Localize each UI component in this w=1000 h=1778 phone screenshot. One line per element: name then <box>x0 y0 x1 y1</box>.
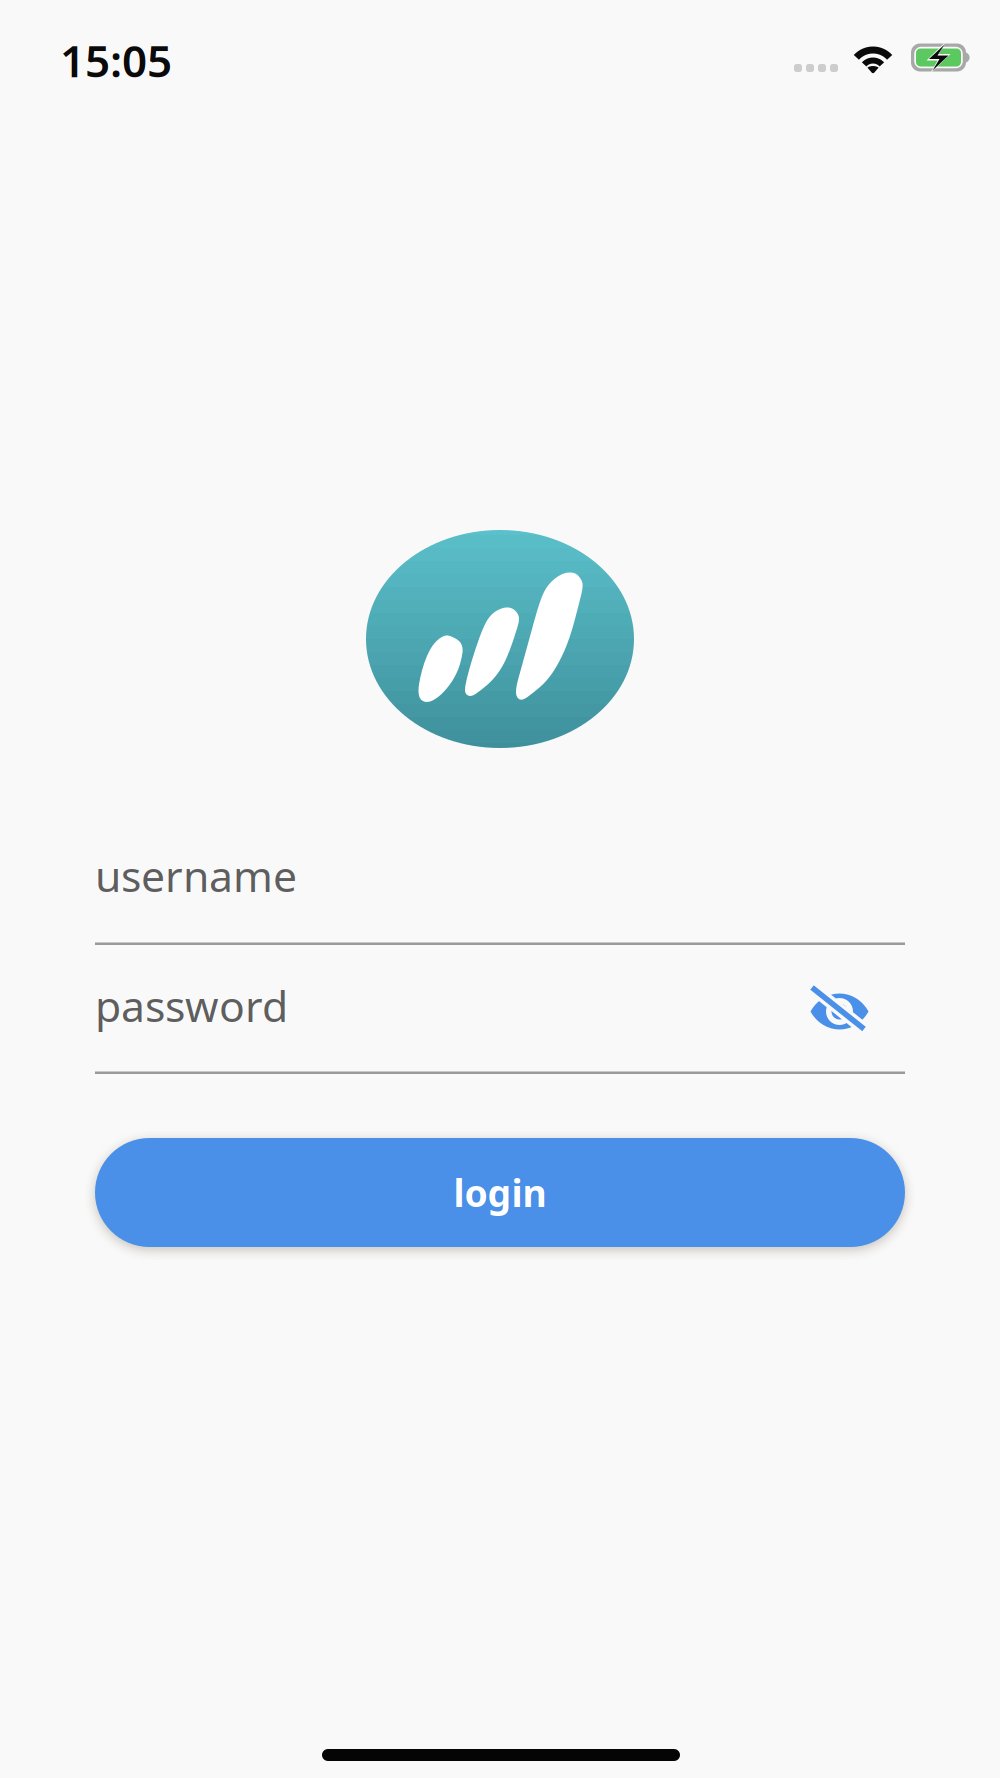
button[interactable]: Show password <box>792 972 888 1056</box>
staticText: 15:05 <box>60 31 172 89</box>
button[interactable]: password <box>95 955 905 1053</box>
staticText: username <box>95 847 297 904</box>
staticText: password <box>95 977 288 1034</box>
button[interactable]: login <box>95 1138 905 1247</box>
button[interactable]: username <box>95 825 905 923</box>
staticText: login <box>453 1168 546 1217</box>
